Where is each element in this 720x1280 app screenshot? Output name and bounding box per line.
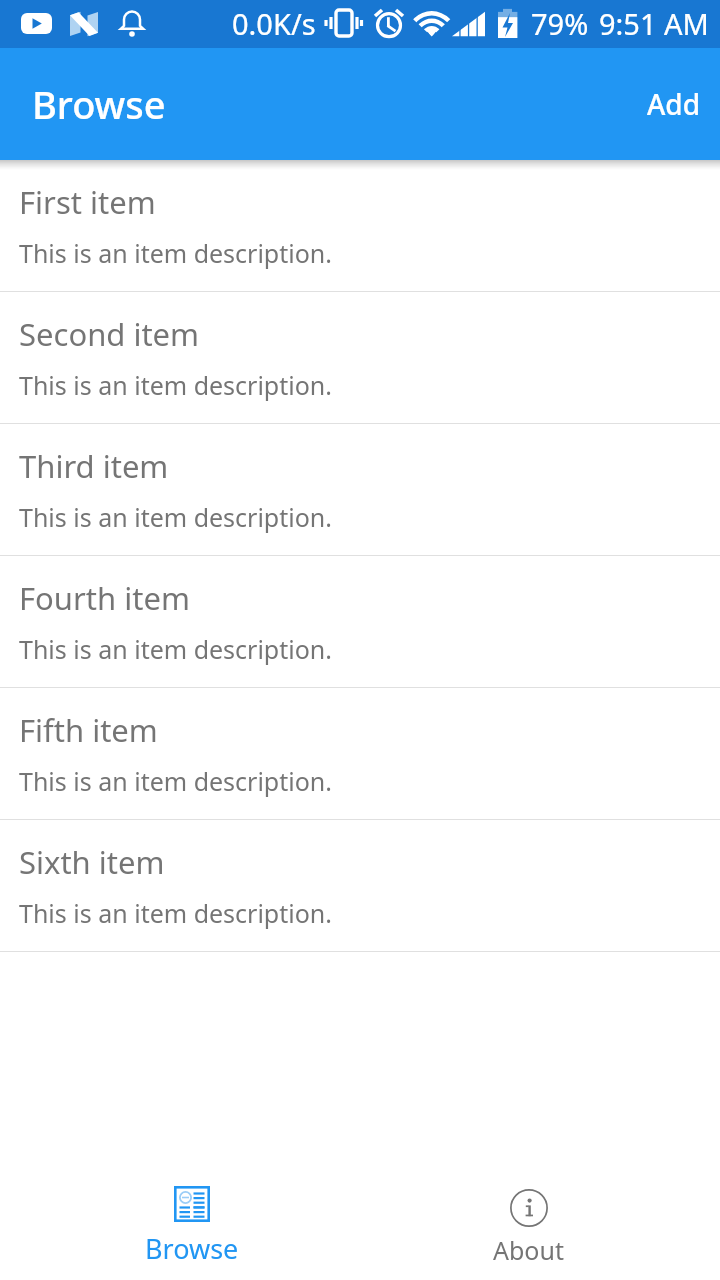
staticText: Fifth item bbox=[19, 709, 158, 751]
staticText: Browse bbox=[145, 1230, 239, 1267]
staticText: 9:51 AM bbox=[599, 4, 709, 43]
staticText: This is an item description. bbox=[19, 236, 332, 270]
staticText: This is an item description. bbox=[19, 764, 332, 798]
button[interactable]: Add bbox=[625, 61, 720, 147]
button[interactable]: Browse bbox=[24, 1152, 360, 1280]
staticText: Add bbox=[647, 85, 701, 123]
button[interactable]: Second item bbox=[0, 292, 720, 424]
button[interactable]: Fifth item bbox=[0, 688, 720, 820]
staticText: Sixth item bbox=[19, 841, 165, 883]
staticText: First item bbox=[19, 181, 156, 223]
button[interactable]: About bbox=[360, 1152, 696, 1280]
staticText: 0.0K/s bbox=[232, 4, 316, 43]
staticText: This is an item description. bbox=[19, 896, 332, 930]
staticText: This is an item description. bbox=[19, 632, 332, 666]
staticText: About bbox=[493, 1233, 564, 1267]
button[interactable]: Sixth item bbox=[0, 820, 720, 952]
staticText: 79% bbox=[531, 4, 589, 43]
staticText: Second item bbox=[19, 313, 200, 355]
button[interactable]: Third item bbox=[0, 424, 720, 556]
button[interactable]: First item bbox=[0, 160, 720, 292]
staticText: Fourth item bbox=[19, 577, 190, 619]
staticText: Third item bbox=[19, 445, 169, 487]
button[interactable]: Fourth item bbox=[0, 556, 720, 688]
staticText: This is an item description. bbox=[19, 500, 332, 534]
staticText: This is an item description. bbox=[19, 368, 332, 402]
staticText: Browse bbox=[32, 78, 166, 130]
